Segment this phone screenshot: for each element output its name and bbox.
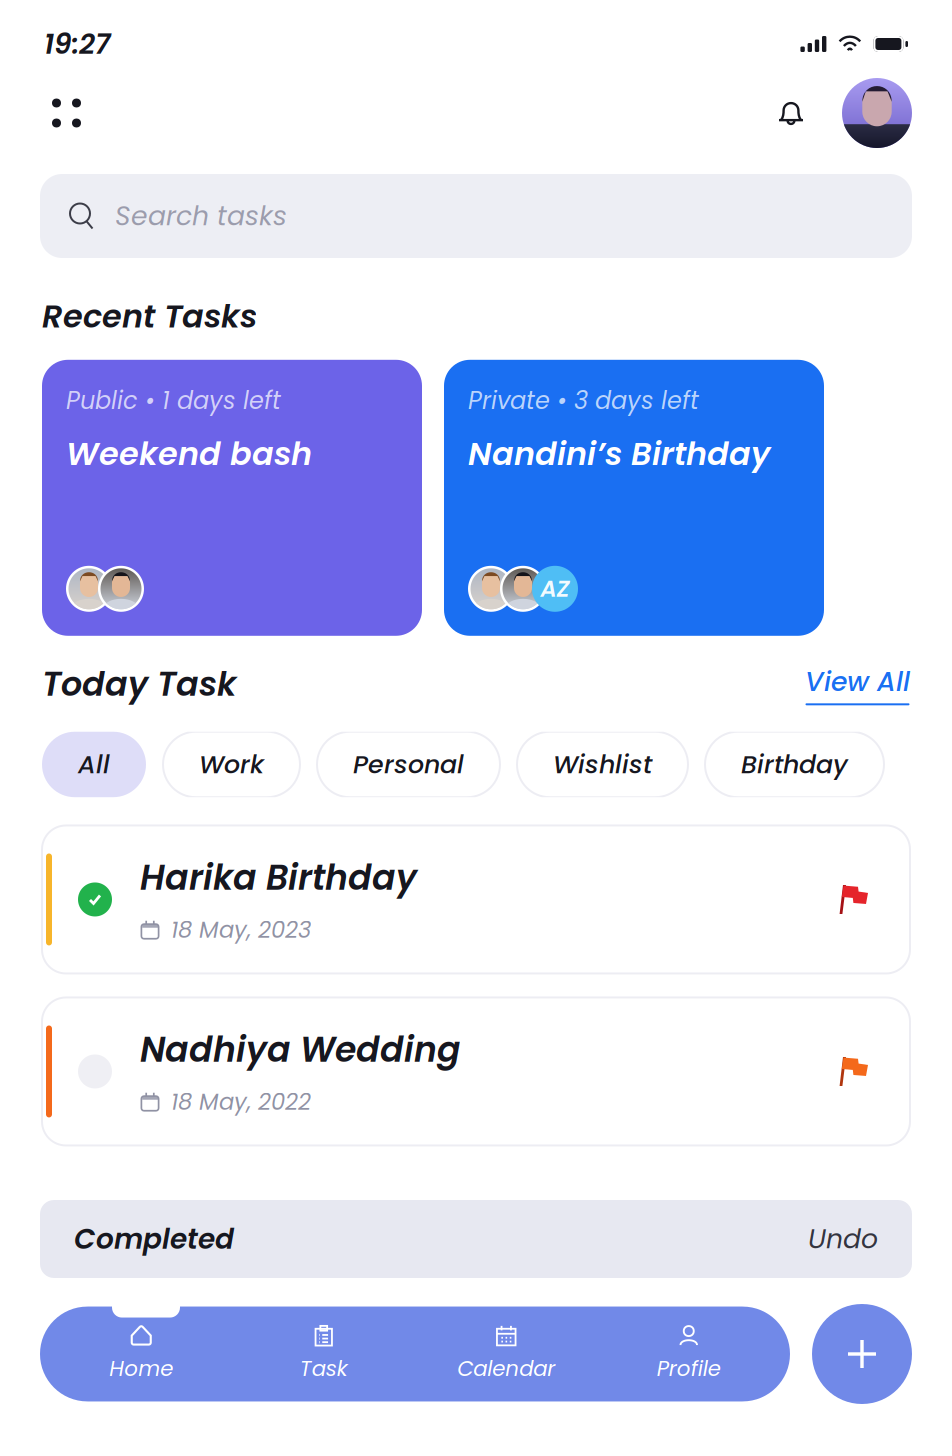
staticText: Recent Tasks: [42, 294, 257, 339]
button[interactable]: Work: [163, 732, 300, 797]
button[interactable]: Personal: [317, 732, 500, 797]
button[interactable]: Profile: [597, 1307, 780, 1401]
staticText: Harika Birthday: [140, 853, 417, 902]
staticText: 19:27: [44, 24, 110, 64]
staticText: Today Task: [42, 661, 236, 707]
staticText: Undo: [808, 1220, 878, 1258]
button[interactable]: All: [42, 732, 146, 797]
button[interactable]: Profile: [842, 78, 912, 148]
staticText: Search tasks: [115, 197, 287, 235]
staticText: AZ: [540, 573, 569, 605]
staticText: Task: [300, 1354, 348, 1383]
button[interactable]: Search tasks: [0, 148, 952, 258]
staticText: 18 May, 2022: [171, 1086, 311, 1118]
staticText: Home: [109, 1354, 173, 1383]
button[interactable]: Menu: [40, 86, 93, 139]
staticText: Private • 3 days left: [468, 384, 699, 417]
button[interactable]: Birthday: [705, 732, 884, 797]
button[interactable]: View All: [805, 663, 910, 705]
button[interactable]: Harika Birthday: [42, 825, 910, 973]
button[interactable]: Undo: [808, 1220, 878, 1258]
button[interactable]: Public • 1 days left: [42, 360, 422, 636]
button[interactable]: Add task: [812, 1304, 912, 1404]
button[interactable]: Calendar: [415, 1307, 597, 1401]
staticText: Work: [199, 747, 264, 782]
staticText: Calendar: [457, 1354, 555, 1383]
staticText: Nandini’s Birthday: [468, 431, 770, 476]
button[interactable]: Task: [232, 1307, 415, 1401]
staticText: Nadhiya Wedding: [140, 1025, 461, 1074]
button[interactable]: Wishlist: [517, 732, 688, 797]
staticText: 18 May, 2023: [171, 914, 311, 946]
staticText: Birthday: [741, 747, 848, 782]
button[interactable]: Home: [50, 1307, 232, 1401]
staticText: Completed: [74, 1219, 234, 1259]
staticText: Wishlist: [553, 747, 652, 782]
button[interactable]: Notifications: [766, 89, 816, 136]
button[interactable]: Private • 3 days left: [444, 360, 824, 636]
staticText: Personal: [353, 747, 464, 782]
staticText: Weekend bash: [66, 431, 312, 476]
staticText: Profile: [657, 1354, 721, 1383]
staticText: Public • 1 days left: [66, 384, 281, 417]
staticText: View All: [805, 663, 910, 700]
button[interactable]: Nadhiya Wedding: [42, 997, 910, 1145]
staticText: All: [78, 747, 110, 782]
